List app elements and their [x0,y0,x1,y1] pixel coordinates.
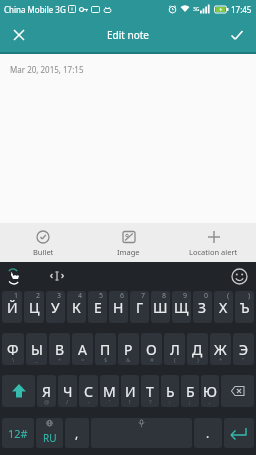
staticText: П [100,340,111,359]
staticText: Mar 20, 2015, 17:15 [10,64,84,75]
staticText: 9 [183,291,188,301]
button[interactable]: , [65,418,89,448]
staticText: Ю [203,382,217,401]
staticText: 2 [36,291,41,301]
staticText: Т [146,382,154,401]
staticText: Б [186,382,195,401]
staticText: / [66,398,69,406]
staticText: Х [219,298,228,317]
staticText: А [78,340,87,359]
button[interactable]: А [72,333,93,365]
staticText: Я [42,382,51,401]
button[interactable]: Р [118,333,139,365]
staticText: - [88,398,90,406]
button[interactable]: О [141,333,162,365]
staticText: Ч [63,382,73,401]
staticText: 12# [8,426,28,441]
staticText: , [209,398,211,406]
button[interactable]: . [194,418,222,448]
button[interactable]: У [46,291,65,323]
staticText: И [125,382,136,401]
staticText: Ф [7,340,19,359]
button[interactable]: Х [214,291,233,323]
staticText: 7 [141,291,146,301]
button[interactable]: Location alert [171,223,256,262]
staticText: Ь [166,382,175,401]
button[interactable]: В [49,333,70,365]
button[interactable]: Э [233,333,254,365]
staticText: 4 [78,291,83,301]
staticText: Ш [153,298,168,317]
staticText: С [84,382,93,401]
staticText: У [51,298,60,317]
staticText: Н [113,298,124,317]
button[interactable] [91,418,192,448]
button[interactable]: Ю [201,375,219,407]
button[interactable]: Й [2,291,22,323]
button[interactable]: Ъ [235,291,254,323]
button[interactable] [3,265,25,287]
button[interactable]: Д [187,333,208,365]
button[interactable]: К [67,291,86,323]
button[interactable]: RU [36,418,63,448]
button[interactable]: И [121,375,139,407]
button[interactable]: М [100,375,119,407]
button[interactable]: Я [37,375,56,407]
staticText: $ [104,356,108,364]
staticText: 3G [193,6,200,13]
staticText: 1 [14,291,19,301]
button[interactable]: Ф [2,333,24,365]
button[interactable] [46,265,68,287]
staticText: Image [117,247,140,257]
staticText: China Mobile 3G [4,4,66,15]
button[interactable] [221,375,254,407]
staticText: \ [12,356,15,364]
staticText: RU [43,431,57,445]
staticText: 6 [120,291,125,301]
staticText: Г [136,298,144,317]
button[interactable]: Л [164,333,185,365]
button[interactable]: Ж [210,333,231,365]
button[interactable]: Ь [161,375,179,407]
button[interactable]: С [79,375,98,407]
staticText: " [242,356,245,364]
staticText: * [219,356,223,364]
staticText: Bullet [33,247,54,257]
button[interactable]: Ч [58,375,77,407]
staticText: Р [124,340,133,359]
button[interactable] [228,265,250,287]
staticText: М [103,382,116,401]
staticText: ' [109,398,111,406]
staticText: , [75,425,79,441]
staticText: ( [174,356,176,364]
button[interactable]: Ш [151,291,170,323]
button[interactable]: Г [130,291,149,323]
button[interactable]: П [95,333,116,365]
staticText: ( [227,291,230,301]
button[interactable]: Е [88,291,107,323]
staticText: Ъ [240,298,250,317]
button[interactable] [228,26,246,44]
button[interactable]: Б [181,375,199,407]
staticText: ? [149,398,152,406]
staticText: К [72,298,81,317]
staticText: Location alert [189,247,238,257]
button[interactable]: З [193,291,212,323]
staticText: О [146,340,157,359]
staticText: Щ [174,298,189,317]
staticText: Д [192,340,203,359]
staticText: 5 [99,291,104,301]
button[interactable]: Ц [24,291,44,323]
staticText: Ж [214,340,227,359]
button[interactable]: Щ [172,291,191,323]
button[interactable] [224,418,254,448]
button[interactable]: Ы [26,333,47,365]
staticText: ) [197,356,199,364]
button[interactable]: Image [86,223,171,262]
button[interactable]: Н [109,291,128,323]
button[interactable]: Bullet [0,223,86,262]
button[interactable]: 12# [2,418,34,448]
button[interactable] [2,375,35,407]
button[interactable] [10,26,28,44]
button[interactable]: Т [141,375,159,407]
